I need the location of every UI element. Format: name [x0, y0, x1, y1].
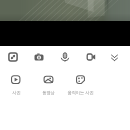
button[interactable]: Photo [43, 74, 54, 85]
staticText: 사진 [12, 90, 21, 95]
staticText: 움직이는 사진 [67, 90, 94, 96]
button[interactable]: Show more [109, 52, 120, 63]
button[interactable]: Expand [8, 52, 18, 62]
button[interactable]: Microphone [60, 52, 70, 62]
button[interactable]: Play [10, 74, 21, 85]
button[interactable]: Camera [34, 52, 44, 62]
button[interactable]: Sticker [75, 74, 86, 85]
button[interactable]: Video [86, 52, 96, 62]
staticText: 동영상 [42, 90, 55, 95]
